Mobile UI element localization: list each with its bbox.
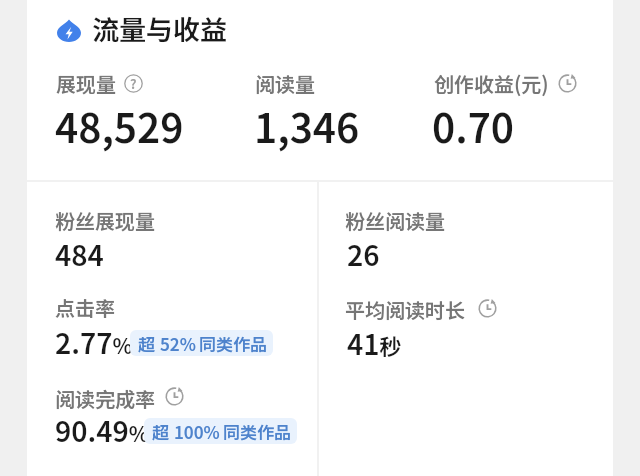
staticText: 阅读量 [255,69,315,98]
staticText: 90.49% [55,410,149,451]
button[interactable]: 超 [130,330,273,356]
staticText: 2.77% [55,322,133,363]
staticText: 0.70 [432,97,515,155]
staticText: ? [130,74,137,93]
staticText: 1,346 [254,97,360,155]
button[interactable]: Refresh [478,299,497,318]
button[interactable]: 超 [144,418,297,444]
staticText: 流量与收益 [92,9,227,48]
staticText: 484 [55,234,104,275]
button[interactable]: Help [124,74,143,93]
staticText: 超 [138,331,155,356]
staticText: 超 [152,419,169,444]
staticText: 52% [160,331,196,356]
button[interactable]: Refresh [558,74,577,93]
staticText: 48,529 [55,97,184,155]
staticText: 同类作品 [223,419,291,444]
staticText: 同类作品 [199,331,267,356]
staticText: 26 [347,234,380,275]
staticText: 平均阅读时长 [345,295,465,324]
staticText: 粉丝阅读量 [345,206,445,235]
staticText: 粉丝展现量 [55,206,155,235]
staticText: 点击率 [55,293,115,322]
staticText: 100% [174,419,220,444]
staticText: 阅读完成率 [55,384,155,413]
staticText: 展现量 [56,69,116,98]
staticText: 41秒 [347,323,402,364]
staticText: 创作收益(元) [434,69,549,98]
button[interactable]: Refresh [165,387,184,406]
